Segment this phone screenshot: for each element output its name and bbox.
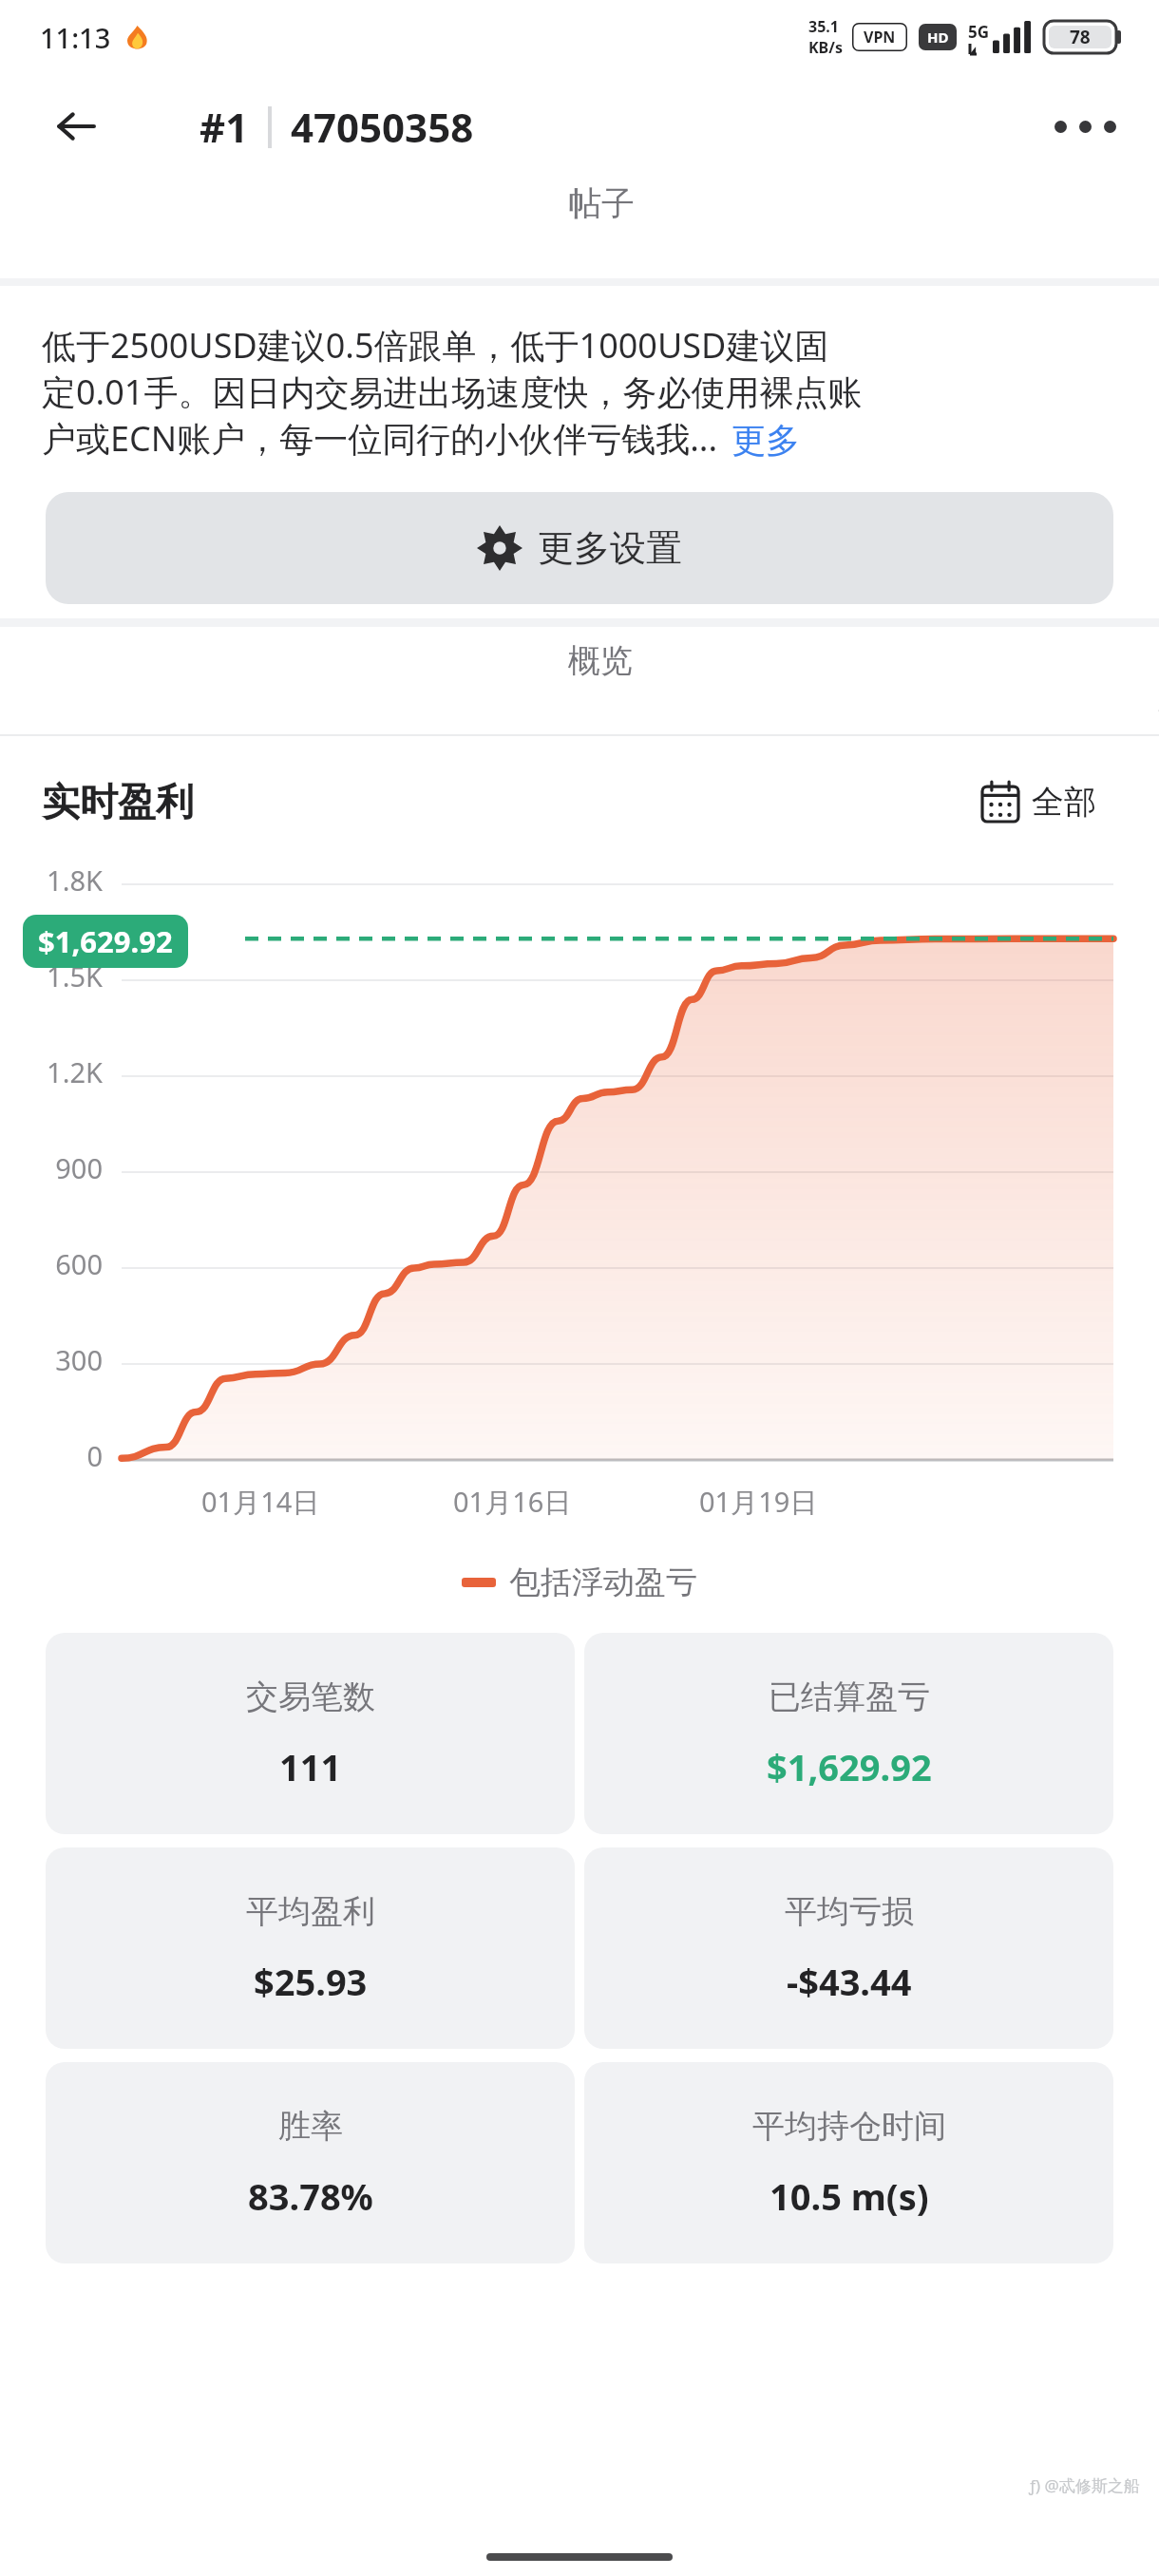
button[interactable]: 平均持仓时间 xyxy=(584,2062,1113,2263)
button[interactable]: 概览 xyxy=(42,640,1159,712)
button[interactable]: 胜率 xyxy=(46,2062,575,2263)
staticText: $25.93 xyxy=(254,1957,368,2006)
staticText: 01月19日 xyxy=(699,1483,818,1521)
staticText: #1 xyxy=(199,100,249,154)
staticText: VPN xyxy=(864,27,896,47)
staticText: 更多设置 xyxy=(538,525,682,571)
button[interactable]: 交易笔数 xyxy=(46,1633,575,1834)
staticText: 全部 xyxy=(1032,782,1096,823)
staticText: 01月16日 xyxy=(453,1483,572,1521)
staticText: 包括浮动盈亏 xyxy=(509,1563,697,1602)
staticText: 111 xyxy=(279,1742,342,1791)
staticText: $1,629.92 xyxy=(767,1742,932,1791)
staticText: 平均持仓时间 xyxy=(752,2106,946,2147)
button[interactable]: Back xyxy=(46,96,106,157)
staticText: -$43.44 xyxy=(787,1957,912,2006)
button[interactable]: 更多 xyxy=(731,419,800,462)
staticText: 胜率 xyxy=(278,2106,343,2147)
staticText: 1.8K xyxy=(0,862,103,899)
staticText: 平均盈利 xyxy=(246,1891,375,1932)
staticText: 定0.01手。因日内交易进出场速度快，务必使用裸点账 xyxy=(42,369,863,415)
staticText: ƒ) @忒修斯之船 xyxy=(1029,2474,1140,2496)
staticText: 1.5K xyxy=(0,957,103,994)
staticText: $1,629.92 xyxy=(38,921,173,961)
staticText: 300 xyxy=(0,1341,103,1378)
staticText: 帖子 xyxy=(568,182,635,224)
staticText: 户或ECN账户，每一位同行的小伙伴亏钱我... xyxy=(42,415,718,462)
staticText: 低于2500USD建议0.5倍跟单，低于1000USD建议固 xyxy=(42,322,829,369)
button[interactable]: 已结算盈亏 xyxy=(584,1633,1113,1834)
staticText: 5G xyxy=(968,21,990,43)
staticText: 已结算盈亏 xyxy=(769,1676,930,1717)
staticText: 实时盈利 xyxy=(42,778,194,825)
button[interactable]: 平均盈利 xyxy=(46,1847,575,2049)
staticText: KB/s xyxy=(808,37,843,58)
button[interactable]: 帖子 xyxy=(44,182,1159,253)
button[interactable]: 全部 xyxy=(959,765,1119,839)
staticText: 35.1 xyxy=(808,16,839,37)
button[interactable]: 更多设置 xyxy=(46,492,1113,604)
staticText: 47050358 xyxy=(291,100,474,154)
staticText: 交易笔数 xyxy=(246,1676,375,1717)
staticText: 概览 xyxy=(568,640,633,681)
staticText: 900 xyxy=(0,1149,103,1186)
button[interactable]: 平均亏损 xyxy=(584,1847,1113,2049)
staticText: 01月14日 xyxy=(201,1483,320,1521)
staticText: 600 xyxy=(0,1245,103,1282)
staticText: 平均亏损 xyxy=(785,1891,914,1932)
staticText: 11:13 xyxy=(40,19,111,56)
staticText: 10.5 m(s) xyxy=(769,2171,929,2221)
staticText: HD xyxy=(927,28,949,47)
staticText: 0 xyxy=(0,1437,103,1474)
staticText: 83.78% xyxy=(248,2171,373,2221)
staticText: 1.2K xyxy=(0,1053,103,1090)
button[interactable]: More options xyxy=(1049,90,1121,162)
staticText: 78 xyxy=(1070,25,1091,49)
